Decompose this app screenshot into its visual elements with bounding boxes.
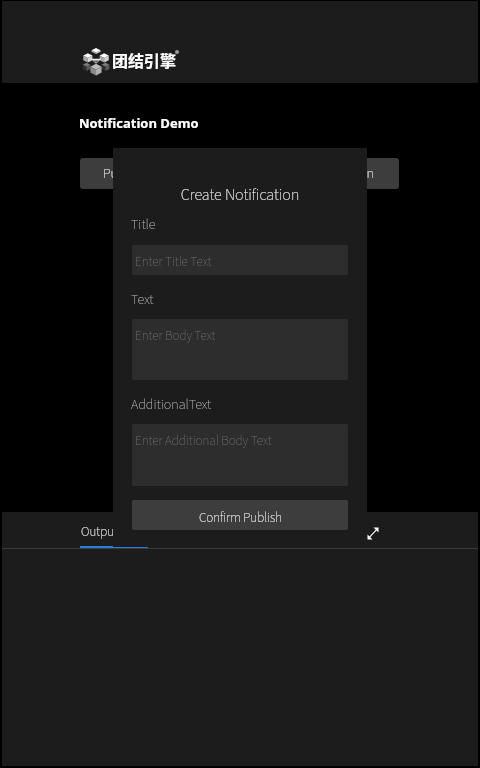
staticText: Enter Title Text <box>135 253 212 272</box>
staticText: AdditionalText <box>131 395 212 415</box>
staticText: Confirm Publish <box>199 509 282 528</box>
staticText: Text <box>131 290 154 310</box>
staticText: Enter Body Text <box>135 327 216 346</box>
button: Create Notification <box>113 148 367 547</box>
staticText: 团结引擎 <box>112 48 177 71</box>
button[interactable]: Enter Body Text <box>132 319 348 380</box>
staticText: Cancel Notification <box>268 164 374 184</box>
staticText: Output <box>81 523 118 542</box>
button[interactable]: Publish Notification <box>80 158 236 189</box>
staticText: Create Notification <box>113 184 367 207</box>
staticText: Notification Demo <box>79 114 199 132</box>
button[interactable]: Enter Additional Body Text <box>132 424 348 486</box>
button[interactable]: Output <box>80 512 148 548</box>
button[interactable]: Expand console <box>358 519 387 548</box>
staticText: Title <box>131 215 156 235</box>
staticText: Enter Additional Body Text <box>135 432 272 451</box>
staticText: Publish Notification <box>103 164 213 184</box>
button[interactable]: Cancel Notification <box>243 158 399 189</box>
button[interactable]: Enter Title Text <box>132 245 348 275</box>
button[interactable]: Confirm Publish <box>132 500 348 530</box>
